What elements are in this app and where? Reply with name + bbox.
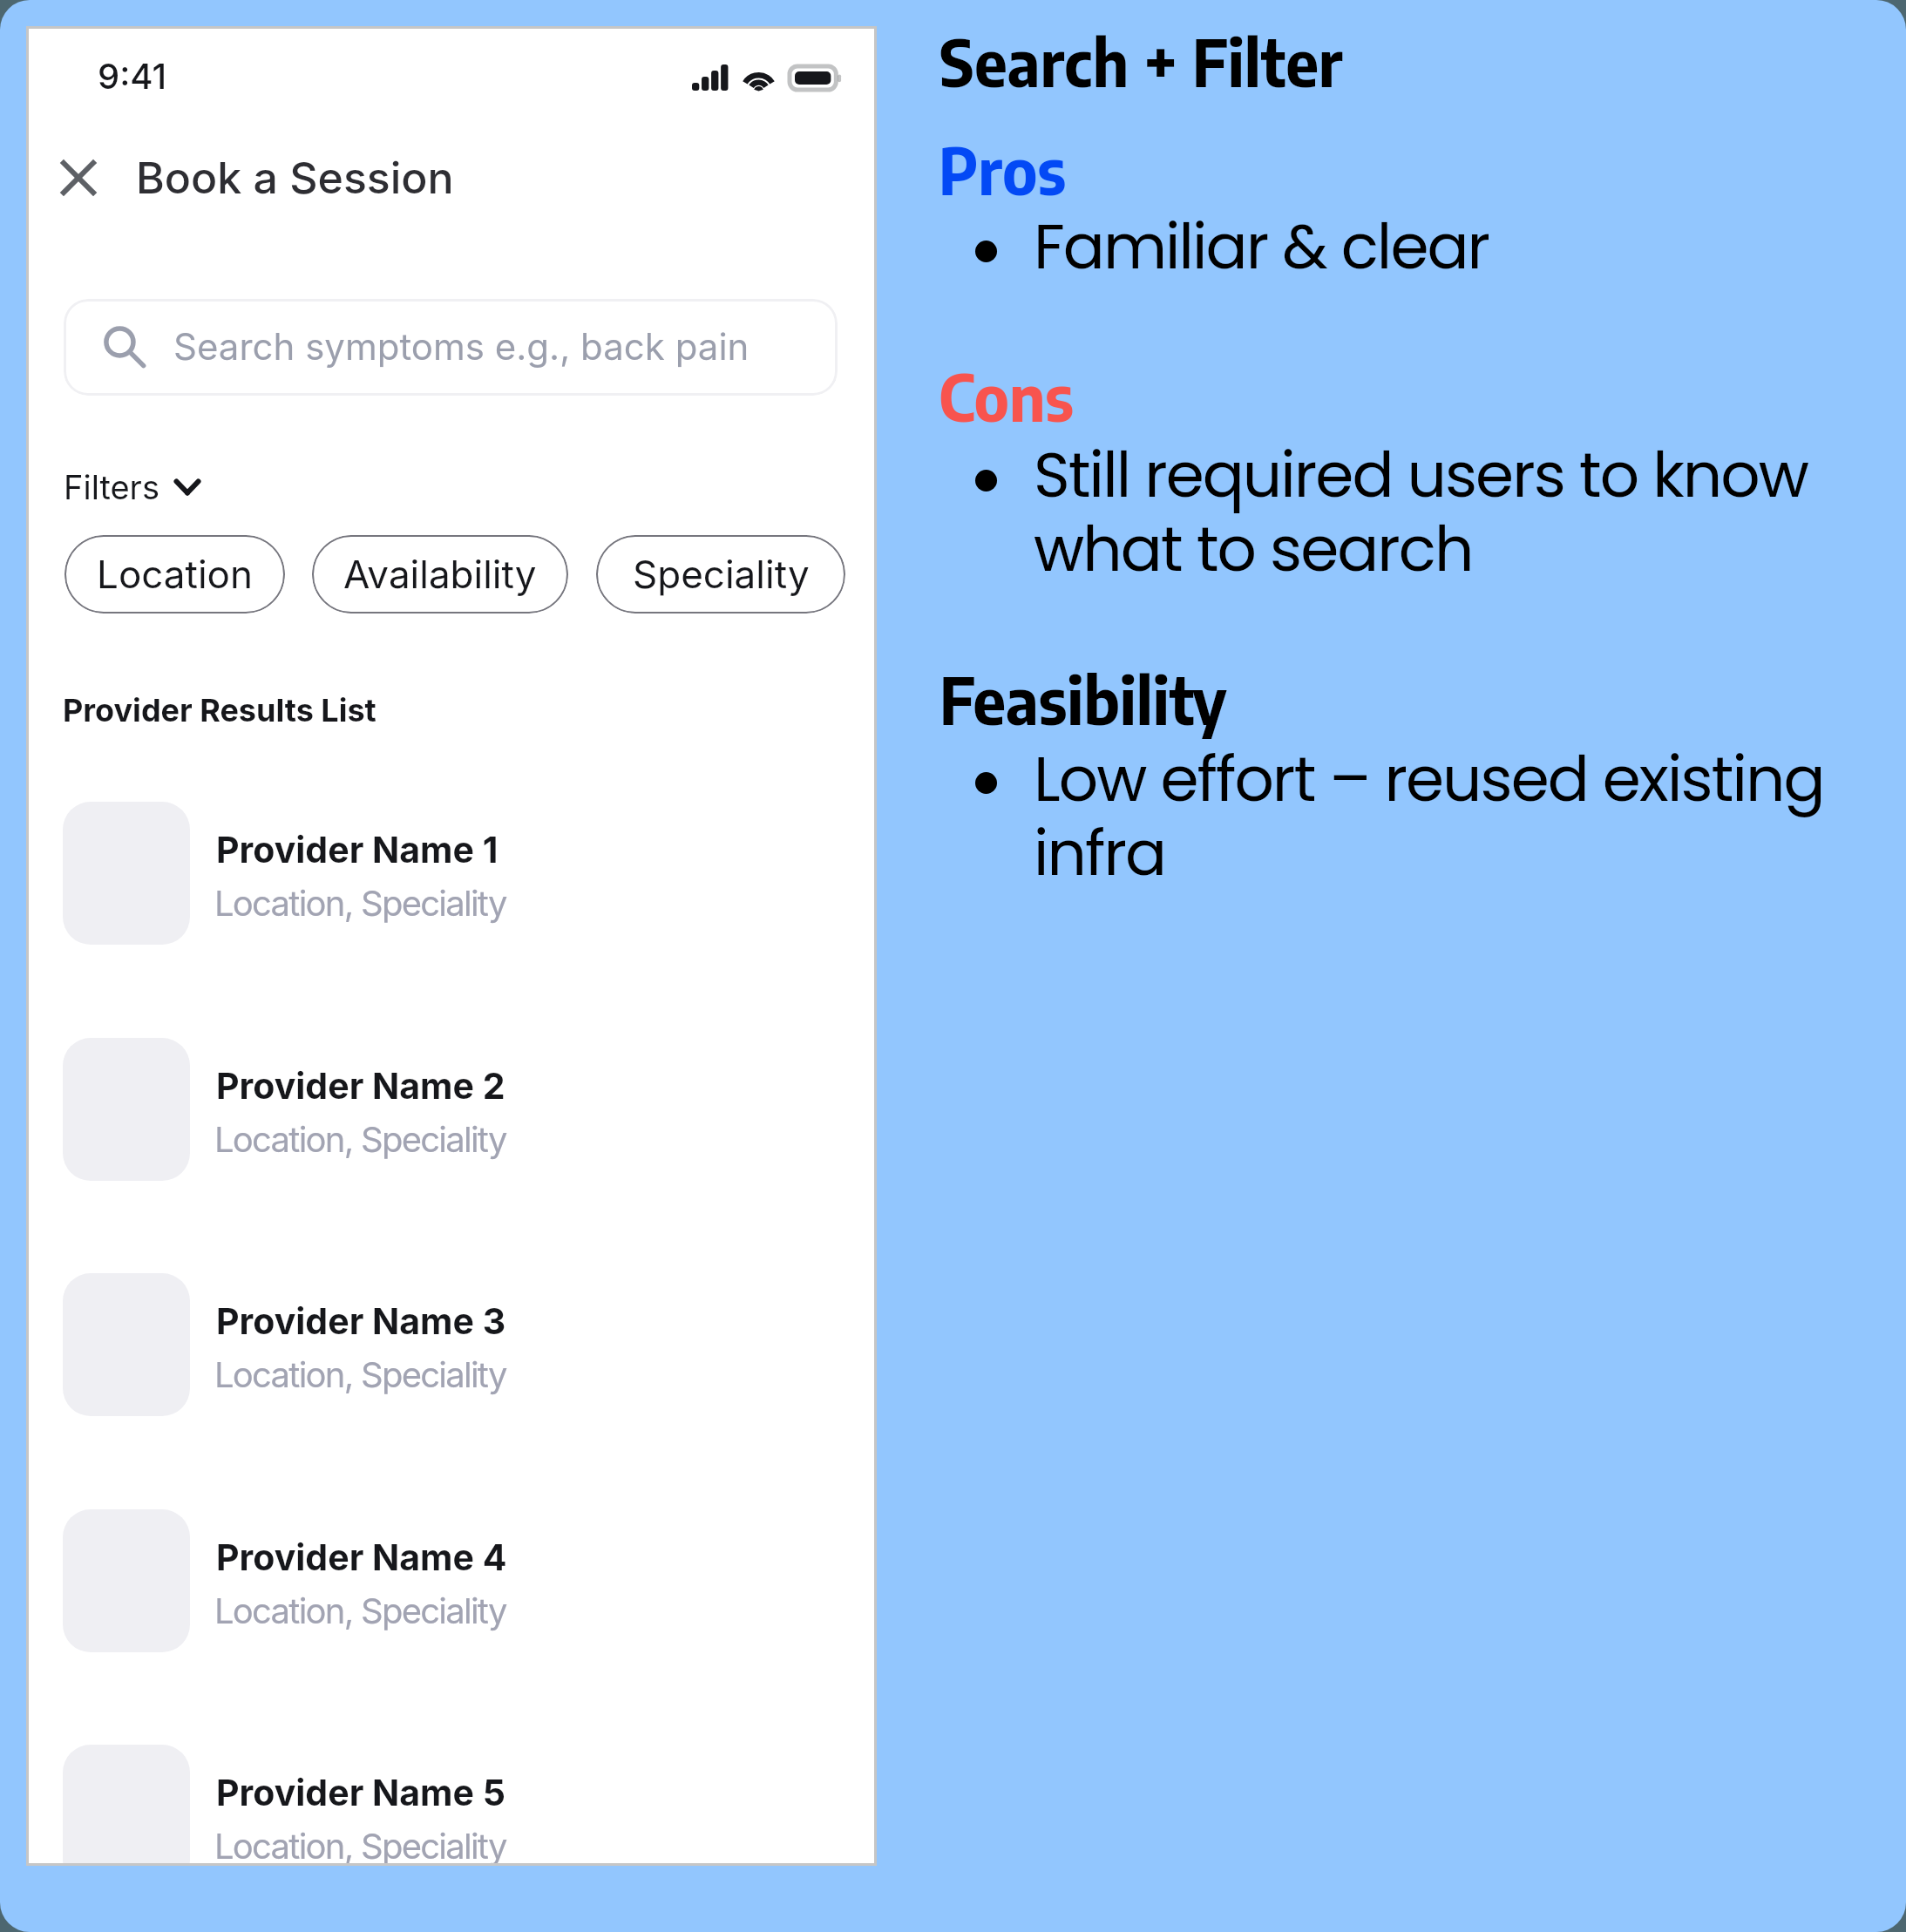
button[interactable]: Provider Name 3 (63, 1273, 760, 1416)
staticText: Search + Filter (939, 22, 1906, 101)
staticText: Filters (64, 467, 245, 507)
button[interactable]: Provider Name 2 (63, 1038, 760, 1181)
staticText: Provider Name 5 (216, 1771, 877, 1814)
staticText: Still required users to know what to sea… (1034, 443, 1905, 591)
staticText: Provider Results List (63, 691, 877, 729)
staticText: Location, Speciality (214, 1825, 877, 1866)
staticText: Feasibility (939, 660, 1906, 739)
staticText: Location, Speciality (214, 1353, 877, 1395)
button[interactable]: Close (36, 135, 121, 220)
staticText: Cons (939, 356, 1906, 436)
staticText: Pros (939, 130, 1906, 209)
button[interactable]: Location (64, 535, 285, 613)
staticText: Book a Session (136, 152, 877, 204)
button[interactable]: Filters (58, 469, 239, 540)
staticText: Provider Name 4 (216, 1535, 877, 1579)
staticText: Location, Speciality (214, 1590, 877, 1631)
button[interactable]: Speciality (596, 535, 845, 613)
staticText: Location (97, 552, 253, 597)
staticText: Provider Name 1 (216, 828, 877, 871)
staticText: Provider Name 2 (216, 1064, 877, 1108)
button[interactable]: Provider Name 1 (63, 802, 760, 945)
button[interactable]: Availability (312, 535, 568, 613)
staticText: Low effort – reused existing infra (1034, 747, 1905, 895)
button[interactable]: Provider Name 4 (63, 1509, 760, 1652)
staticText: Provider Name 3 (216, 1299, 877, 1343)
staticText: Location, Speciality (214, 1118, 877, 1160)
button[interactable]: Provider Name 5 (63, 1745, 760, 1866)
staticText: Availability (343, 552, 537, 597)
staticText: Search symptoms e.g., back pain (173, 324, 838, 369)
staticText: Speciality (633, 552, 810, 597)
staticText: Location, Speciality (214, 882, 877, 924)
button[interactable]: Search symptoms e.g., back pain (64, 299, 838, 396)
staticText: 9:41 (98, 55, 877, 97)
staticText: Familiar & clear (1034, 214, 1906, 288)
